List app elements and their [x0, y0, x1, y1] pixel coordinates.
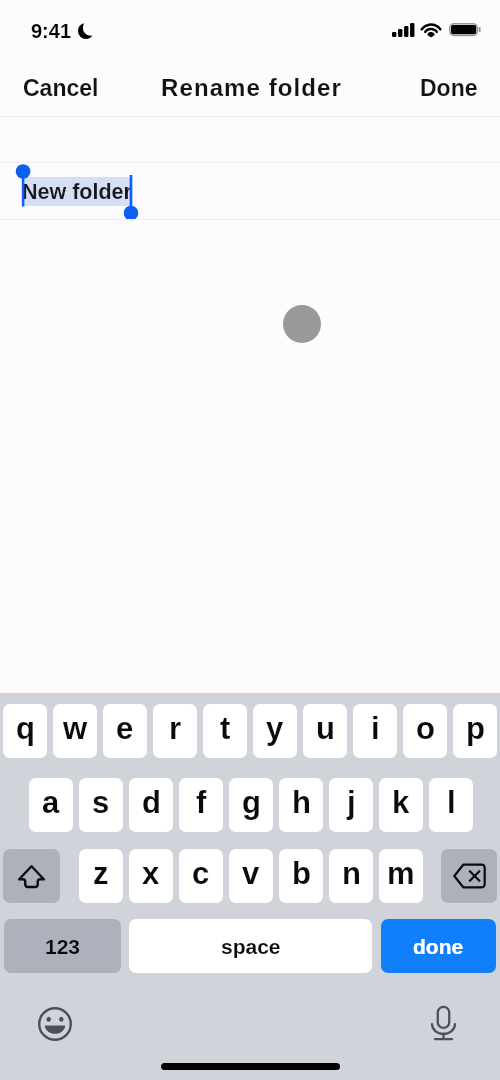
staticText: w: [63, 711, 88, 746]
staticText: space: [221, 935, 281, 958]
button[interactable]: l: [429, 778, 473, 832]
staticText: s: [92, 785, 110, 820]
staticText: e: [116, 711, 134, 746]
button[interactable]: s: [79, 778, 123, 832]
staticText: 9:41: [31, 20, 72, 42]
button[interactable]: Shift: [3, 849, 60, 903]
button[interactable]: e: [103, 704, 147, 758]
button[interactable]: done: [381, 919, 496, 973]
button[interactable]: w: [53, 704, 97, 758]
button[interactable]: d: [129, 778, 173, 832]
button[interactable]: f: [179, 778, 223, 832]
staticText: b: [292, 856, 311, 891]
staticText: q: [16, 711, 35, 746]
staticText: j: [347, 785, 356, 820]
button[interactable]: x: [129, 849, 173, 903]
staticText: h: [292, 785, 311, 820]
button[interactable]: Cancel: [0, 63, 122, 113]
staticText: m: [387, 856, 415, 891]
button[interactable]: v: [229, 849, 273, 903]
button[interactable]: q: [3, 704, 47, 758]
staticText: Done: [420, 75, 478, 101]
staticText: i: [371, 711, 380, 746]
button[interactable]: u: [303, 704, 347, 758]
staticText: l: [447, 785, 456, 820]
staticText: o: [416, 711, 435, 746]
button[interactable]: Emoji keyboard: [38, 1007, 72, 1041]
button[interactable]: t: [203, 704, 247, 758]
staticText: New folder: [22, 180, 132, 204]
button[interactable]: z: [79, 849, 123, 903]
button[interactable]: g: [229, 778, 273, 832]
staticText: t: [220, 711, 231, 746]
staticText: a: [42, 785, 60, 820]
staticText: 123: [45, 935, 81, 958]
button[interactable]: r: [153, 704, 197, 758]
button[interactable]: j: [329, 778, 373, 832]
button[interactable]: a: [29, 778, 73, 832]
staticText: g: [242, 785, 261, 820]
staticText: Rename folder: [161, 74, 343, 101]
button[interactable]: c: [179, 849, 223, 903]
button[interactable]: 123: [4, 919, 121, 973]
staticText: f: [196, 785, 207, 820]
button[interactable]: i: [353, 704, 397, 758]
button[interactable]: p: [453, 704, 497, 758]
button[interactable]: o: [403, 704, 447, 758]
button[interactable]: space: [129, 919, 372, 973]
staticText: c: [192, 856, 210, 891]
button[interactable]: h: [279, 778, 323, 832]
staticText: u: [316, 711, 335, 746]
button[interactable]: Backspace: [441, 849, 497, 903]
staticText: k: [392, 785, 410, 820]
button[interactable]: y: [253, 704, 297, 758]
staticText: z: [93, 856, 109, 891]
staticText: x: [142, 856, 160, 891]
button[interactable]: Done: [398, 63, 500, 113]
staticText: n: [342, 856, 361, 891]
button[interactable]: n: [329, 849, 373, 903]
staticText: Cancel: [23, 75, 99, 101]
button[interactable]: k: [379, 778, 423, 832]
staticText: d: [142, 785, 161, 820]
button[interactable]: b: [279, 849, 323, 903]
button[interactable]: Dictation: [425, 1005, 462, 1042]
staticText: r: [169, 711, 182, 746]
staticText: y: [266, 711, 284, 746]
button[interactable]: m: [379, 849, 423, 903]
staticText: v: [242, 856, 260, 891]
staticText: done: [413, 935, 464, 958]
staticText: p: [466, 711, 485, 746]
